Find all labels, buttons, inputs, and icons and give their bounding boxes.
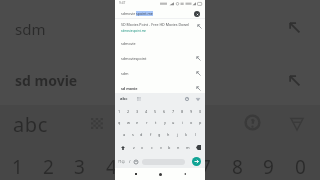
- button[interactable]: sdmovie: [115, 36, 205, 50]
- button[interactable]: b: [165, 140, 174, 155]
- button[interactable]: abc: [120, 96, 128, 102]
- button[interactable]: z: [129, 140, 138, 155]
- staticText: sdm: [15, 19, 46, 39]
- button[interactable]: c: [147, 140, 156, 155]
- button[interactable]: w: [124, 117, 133, 128]
- staticText: o: [190, 120, 193, 125]
- button[interactable]: u: [169, 117, 178, 128]
- button[interactable]: Hide keyboard: [196, 98, 200, 101]
- button[interactable]: Insert suggestion: [195, 55, 201, 61]
- staticText: k: [185, 132, 188, 137]
- button[interactable]: sdm: [115, 66, 205, 80]
- button[interactable]: x: [138, 140, 147, 155]
- staticText: sdmoviespoint.me: [121, 29, 146, 33]
- button[interactable]: Back: [181, 170, 189, 178]
- button[interactable]: q: [115, 117, 124, 128]
- button[interactable]: 5: [151, 105, 160, 117]
- button[interactable]: Translate: [137, 97, 141, 101]
- staticText: SD Movies Point - Free HD Movies Downl: [121, 22, 190, 27]
- button[interactable]: m: [183, 140, 192, 155]
- button[interactable]: Emoji: [134, 160, 138, 164]
- staticText: 3: [74, 154, 85, 180]
- button[interactable]: Shift: [116, 140, 129, 155]
- button[interactable]: Recents: [132, 170, 140, 178]
- staticText: z: [133, 145, 135, 150]
- button[interactable]: d: [137, 128, 146, 140]
- button[interactable]: i: [178, 117, 187, 128]
- staticText: sdmovie: [121, 41, 201, 46]
- button[interactable]: n: [174, 140, 183, 155]
- button[interactable]: j: [173, 128, 182, 140]
- staticText: p: [199, 120, 202, 125]
- staticText: 8: [232, 154, 243, 180]
- staticText: l: [195, 132, 196, 137]
- staticText: s: [132, 132, 134, 137]
- staticText: t: [155, 120, 157, 125]
- button[interactable]: s: [128, 128, 137, 140]
- button[interactable]: g: [155, 128, 164, 140]
- staticText: w: [127, 120, 130, 125]
- button[interactable]: t: [151, 117, 160, 128]
- staticText: 0: [199, 109, 202, 114]
- button[interactable]: k: [182, 128, 191, 140]
- button[interactable]: SD Movies Point - Free HD Movies Downl: [115, 19, 205, 36]
- staticText: 4: [145, 109, 148, 114]
- button[interactable]: Clear query: [194, 11, 200, 17]
- staticText: x: [141, 145, 144, 150]
- button[interactable]: 7: [169, 105, 178, 117]
- staticText: 5: [154, 109, 157, 114]
- button[interactable]: o: [187, 117, 196, 128]
- staticText: sd movie: [121, 86, 195, 91]
- button[interactable]: Help: [185, 97, 189, 101]
- button[interactable]: 9: [187, 105, 196, 117]
- button[interactable]: Insert suggestion: [195, 70, 201, 76]
- button[interactable]: v: [156, 140, 165, 155]
- button[interactable]: Insert suggestion: [195, 85, 201, 91]
- staticText: 2: [127, 109, 130, 114]
- button[interactable]: 0: [196, 105, 205, 117]
- staticText: b: [168, 145, 171, 150]
- button[interactable]: a: [120, 128, 128, 140]
- button[interactable]: 8: [178, 105, 187, 117]
- staticText: abc: [120, 96, 128, 102]
- staticText: 7: [200, 154, 211, 180]
- button[interactable]: Symbols: [118, 159, 125, 164]
- button[interactable]: 1: [115, 105, 124, 117]
- staticText: n: [177, 145, 180, 150]
- button[interactable]: r: [142, 117, 151, 128]
- staticText: 9: [263, 154, 274, 180]
- button[interactable]: l: [191, 128, 200, 140]
- button[interactable]: e: [133, 117, 142, 128]
- staticText: 9:47: [119, 1, 126, 5]
- button[interactable]: f: [146, 128, 155, 140]
- staticText: sdmoviespoint: [121, 56, 195, 61]
- staticText: 2: [43, 154, 54, 180]
- button[interactable]: y: [160, 117, 169, 128]
- staticText: a: [123, 132, 126, 137]
- staticText: g: [158, 132, 161, 137]
- staticText: sd movie: [15, 71, 78, 90]
- staticText: sdmovie: [121, 11, 136, 16]
- staticText: c: [151, 145, 153, 150]
- button[interactable]: 4: [142, 105, 151, 117]
- button[interactable]: Insert suggestion: [196, 23, 202, 29]
- button[interactable]: Backspace: [192, 140, 204, 155]
- button[interactable]: 2: [124, 105, 133, 117]
- button[interactable]: Search: [192, 157, 201, 166]
- button[interactable]: /: [129, 159, 131, 164]
- button[interactable]: sd movie: [115, 81, 205, 95]
- button[interactable]: sdmoviespoint: [115, 51, 205, 65]
- button[interactable]: h: [164, 128, 173, 140]
- button[interactable]: p: [196, 117, 205, 128]
- button[interactable]: 6: [160, 105, 169, 117]
- staticText: /: [129, 159, 131, 164]
- staticText: 1: [118, 109, 121, 114]
- button[interactable]: 3: [133, 105, 142, 117]
- button[interactable]: Home: [156, 170, 164, 178]
- staticText: 1: [12, 154, 23, 180]
- staticText: abc: [13, 111, 48, 138]
- staticText: spoint.me: [136, 11, 153, 16]
- staticText: u: [172, 120, 175, 125]
- staticText: y: [164, 120, 166, 125]
